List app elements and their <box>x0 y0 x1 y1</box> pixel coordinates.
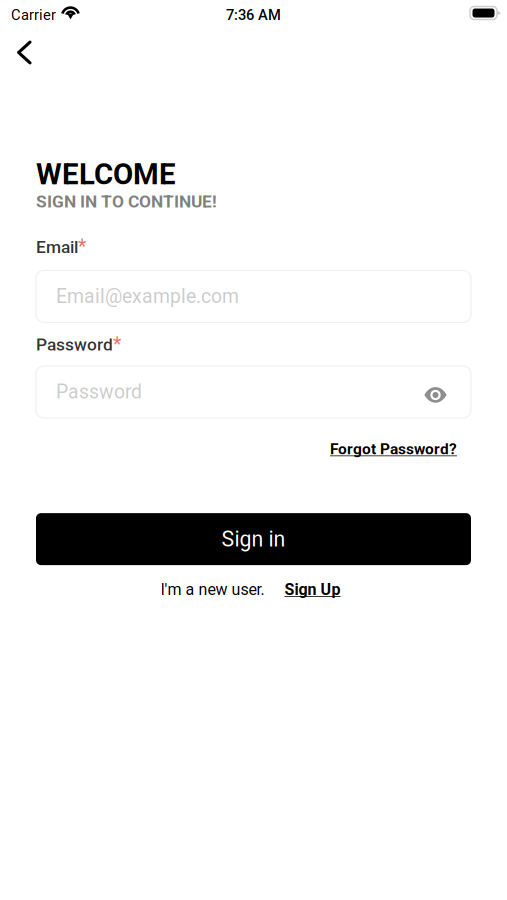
button[interactable]: Sign Up <box>284 580 340 599</box>
staticText: Forgot Password? <box>330 440 457 458</box>
button[interactable]: Forgot Password? <box>330 440 457 458</box>
staticText: I'm a new user. <box>160 580 264 599</box>
button[interactable]: Sign in <box>36 513 471 565</box>
staticText: Carrier <box>11 6 56 24</box>
staticText: Password <box>36 334 113 355</box>
button[interactable]: Back <box>0 30 47 76</box>
staticText: Sign in <box>221 527 285 552</box>
staticText: * <box>113 333 121 356</box>
button[interactable]: Show password <box>424 381 451 402</box>
staticText: * <box>78 236 86 258</box>
staticText: SIGN IN TO CONTINUE! <box>36 191 217 212</box>
staticText: Email <box>36 237 78 257</box>
staticText: 7:36 AM <box>226 6 281 24</box>
staticText: Password <box>56 381 142 403</box>
staticText: WELCOME <box>36 157 176 191</box>
staticText: Sign Up <box>284 580 340 599</box>
staticText: Email@example.com <box>56 285 239 308</box>
